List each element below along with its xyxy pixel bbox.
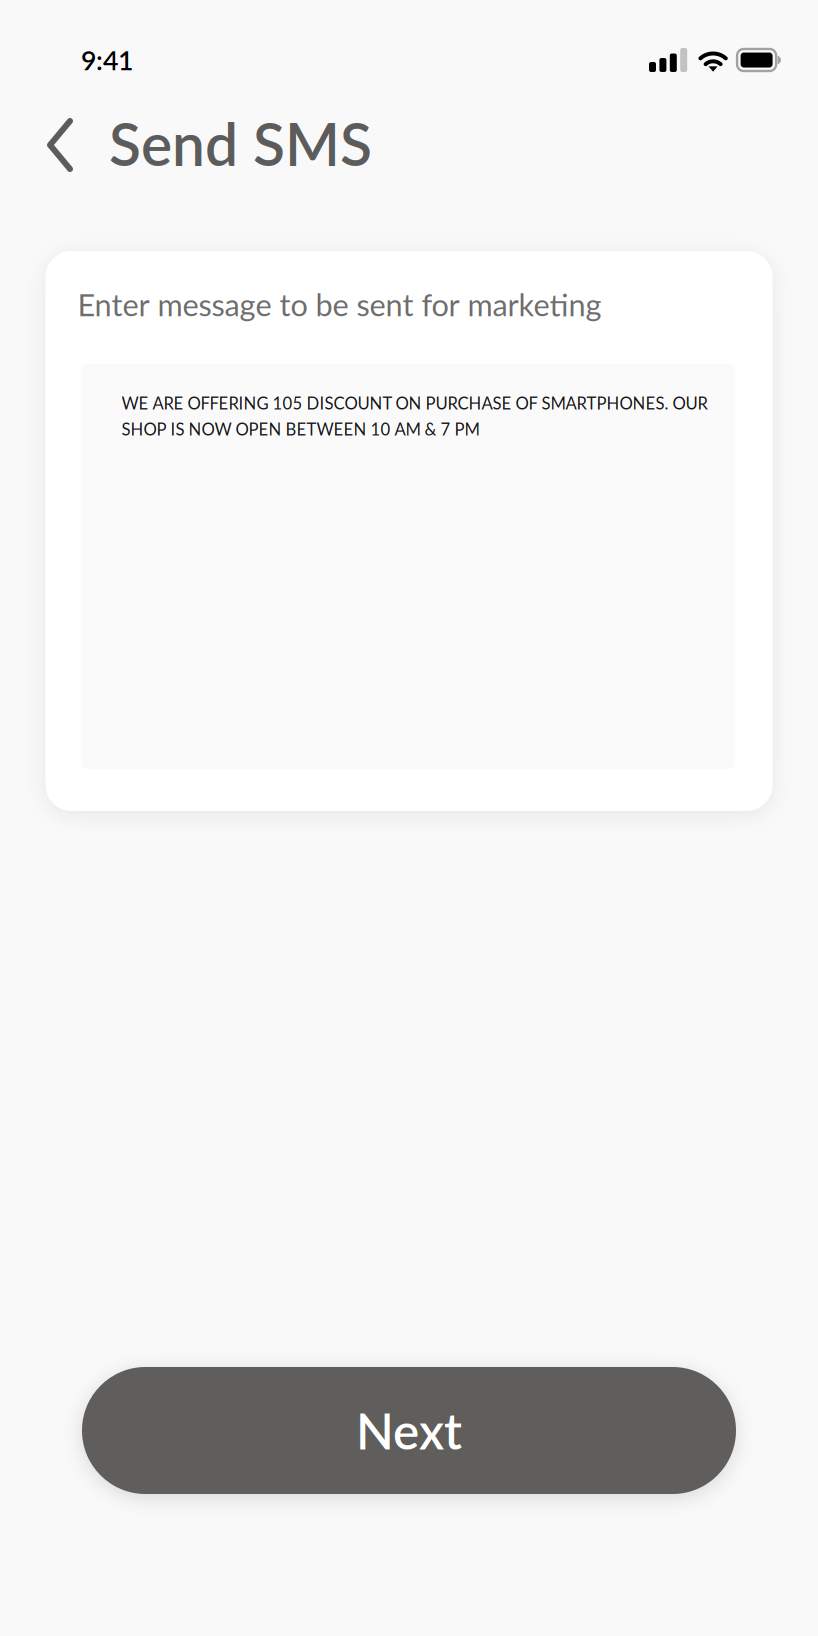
staticText: Next xyxy=(356,1401,462,1460)
staticText: 9:41 xyxy=(81,44,133,76)
button[interactable]: Back xyxy=(24,105,96,185)
staticText: WE ARE OFFERING 105 DISCOUNT ON PURCHASE… xyxy=(121,393,707,439)
staticText: Send SMS xyxy=(109,108,372,178)
staticText: Enter message to be sent for marketing xyxy=(77,286,601,323)
button[interactable]: Next xyxy=(82,1367,736,1494)
